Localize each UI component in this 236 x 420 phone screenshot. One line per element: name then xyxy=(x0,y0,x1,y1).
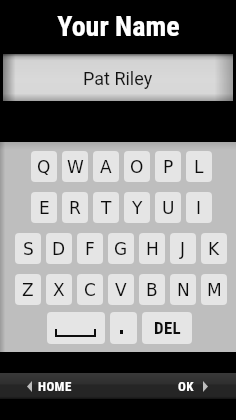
staticText: DEL xyxy=(154,318,181,338)
staticText: HOME xyxy=(38,379,72,394)
button[interactable]: F xyxy=(77,233,103,264)
staticText: R xyxy=(69,198,81,218)
staticText: B xyxy=(146,280,158,300)
staticText: Pat Riley xyxy=(83,68,153,89)
staticText: L xyxy=(194,157,204,177)
button[interactable]: T xyxy=(93,192,119,223)
button[interactable]: J xyxy=(170,233,196,264)
button[interactable]: X xyxy=(46,274,72,305)
button[interactable]: I xyxy=(186,192,212,223)
button[interactable]: R xyxy=(62,192,88,223)
button[interactable]: O xyxy=(124,151,150,182)
button[interactable]: H xyxy=(139,233,165,264)
staticText: Y xyxy=(132,198,143,218)
button[interactable]: C xyxy=(77,274,103,305)
button[interactable]: W xyxy=(62,151,88,182)
staticText: O xyxy=(130,157,144,177)
button[interactable]: L xyxy=(186,151,212,182)
staticText: T xyxy=(101,198,112,218)
button[interactable]: Z xyxy=(15,274,41,305)
button[interactable]: OK xyxy=(178,373,208,399)
staticText: W xyxy=(67,157,84,177)
staticText: X xyxy=(53,280,65,300)
button[interactable]: K xyxy=(201,233,227,264)
staticText: OK xyxy=(178,379,194,394)
staticText: Z xyxy=(22,280,34,300)
button[interactable]: A xyxy=(93,151,119,182)
staticText: C xyxy=(84,280,96,300)
button[interactable]: U xyxy=(155,192,181,223)
staticText: A xyxy=(100,157,112,177)
staticText: N xyxy=(177,280,190,300)
button[interactable]: HOME xyxy=(27,373,72,399)
button[interactable]: Y xyxy=(124,192,150,223)
button[interactable]: V xyxy=(108,274,134,305)
button[interactable]: N xyxy=(170,274,196,305)
staticText: K xyxy=(208,239,220,259)
button[interactable]: Delete xyxy=(142,312,192,344)
staticText: U xyxy=(162,198,175,218)
button[interactable]: Space xyxy=(47,312,105,344)
button[interactable]: Pat Riley xyxy=(3,54,233,101)
staticText: V xyxy=(115,280,127,300)
button[interactable]: Period xyxy=(110,312,137,344)
button[interactable]: M xyxy=(201,274,227,305)
staticText: H xyxy=(146,239,159,259)
button[interactable]: E xyxy=(31,192,57,223)
button[interactable]: B xyxy=(139,274,165,305)
staticText: Your Name xyxy=(57,10,180,43)
staticText: P xyxy=(163,157,174,177)
button[interactable]: G xyxy=(108,233,134,264)
staticText: M xyxy=(207,280,222,300)
staticText: S xyxy=(23,239,34,259)
staticText: J xyxy=(180,239,186,259)
staticText: D xyxy=(52,239,66,259)
button[interactable]: S xyxy=(15,233,41,264)
staticText: I xyxy=(196,198,202,218)
button[interactable]: Q xyxy=(31,151,57,182)
staticText: F xyxy=(85,239,95,259)
button[interactable]: D xyxy=(46,233,72,264)
staticText: E xyxy=(39,198,50,218)
staticText: Q xyxy=(37,157,51,177)
staticText: G xyxy=(114,239,128,259)
button[interactable]: P xyxy=(155,151,181,182)
